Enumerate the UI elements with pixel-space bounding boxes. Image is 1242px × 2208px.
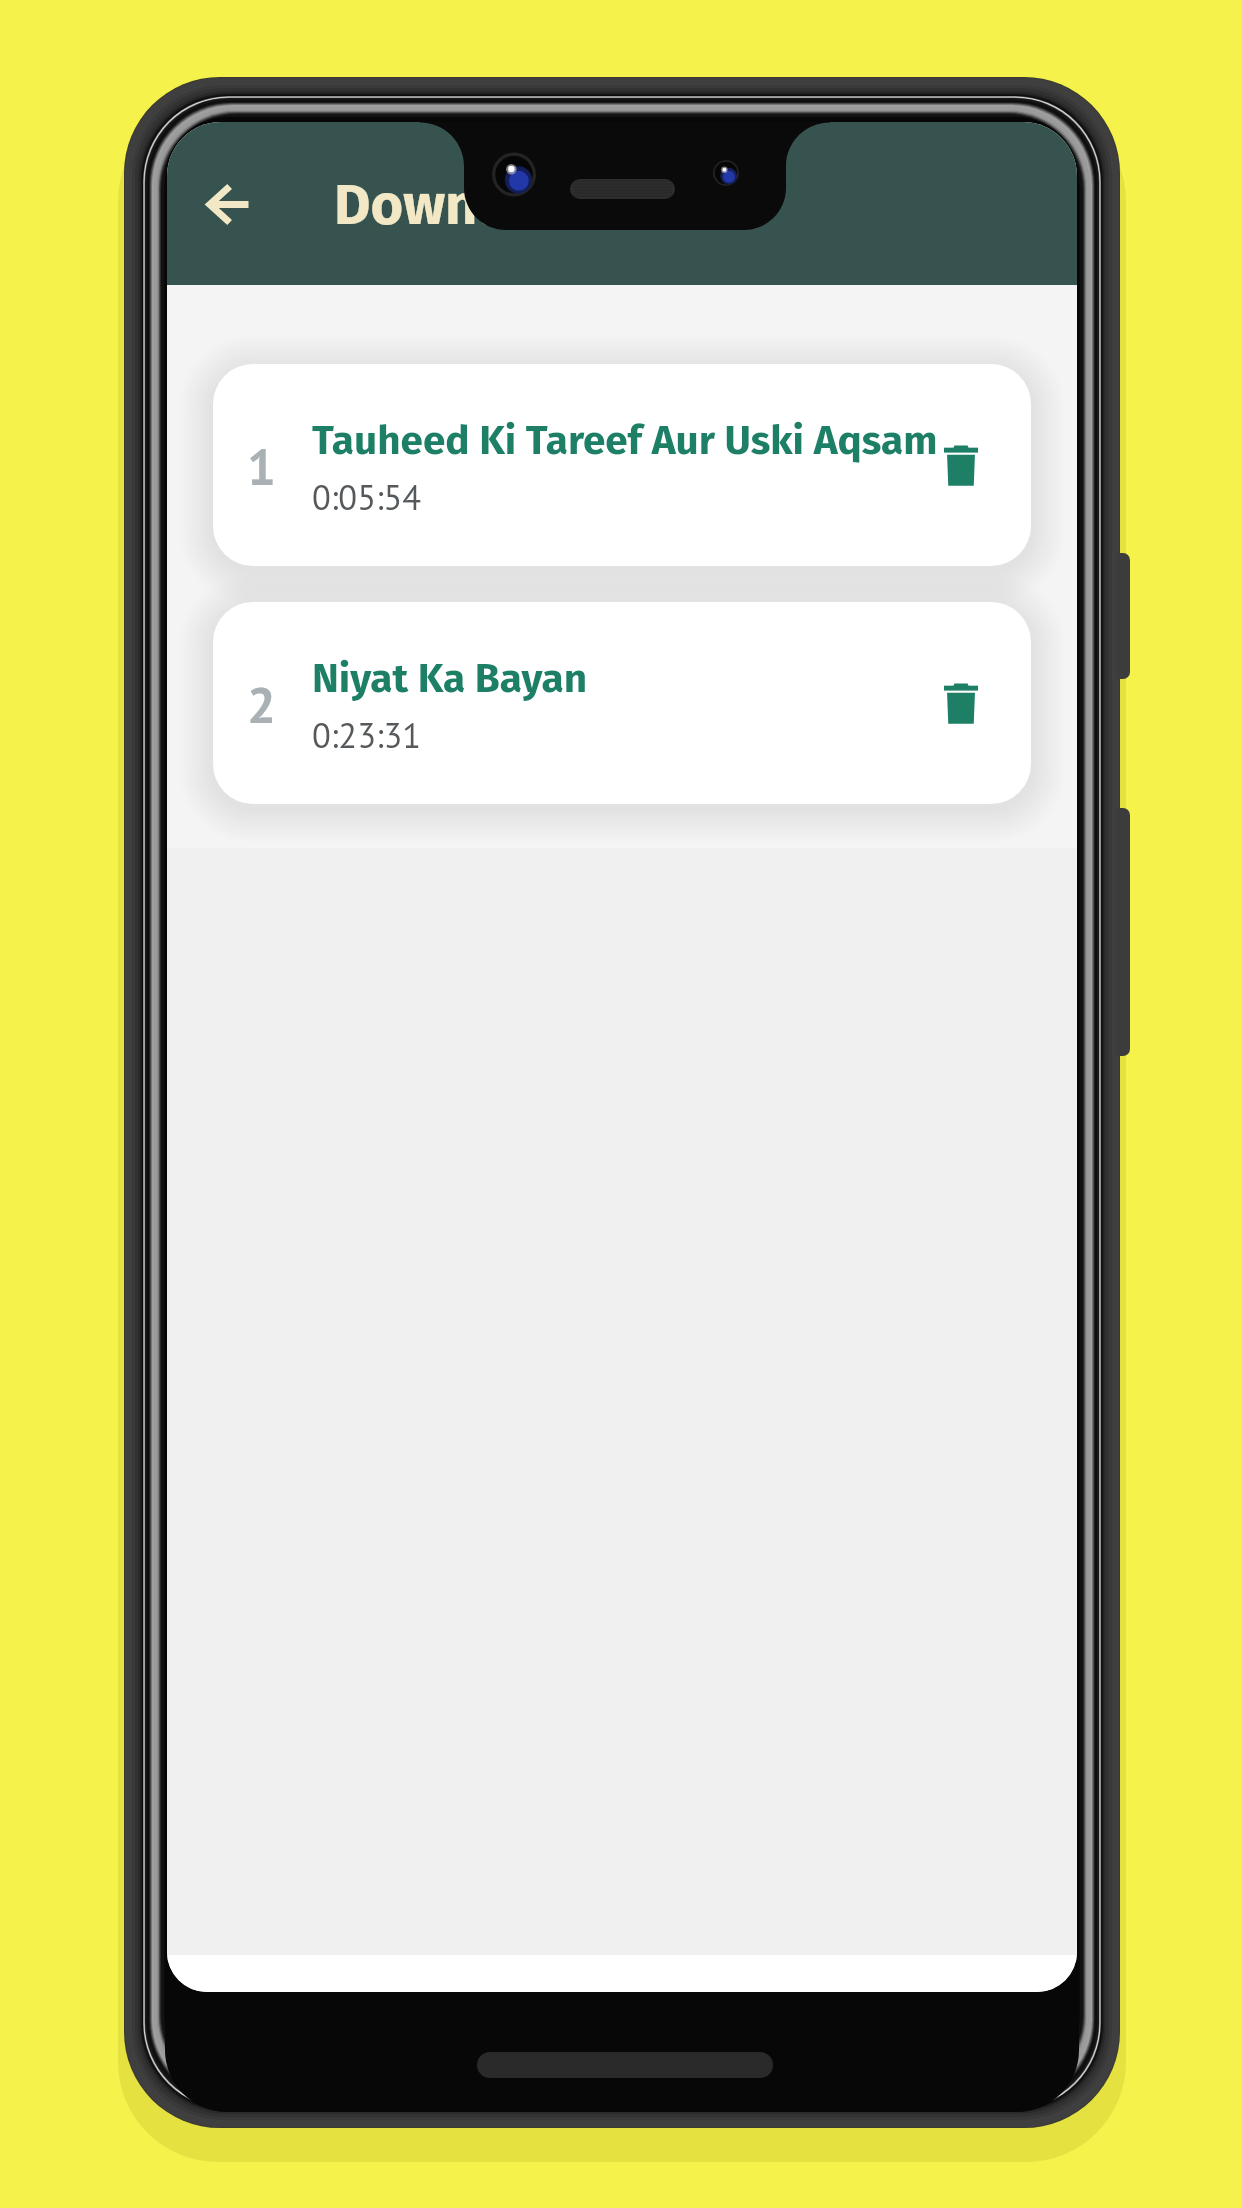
button[interactable]: 1 xyxy=(213,364,1031,566)
staticText: Downloads xyxy=(334,172,618,239)
staticText: 0:05:54 xyxy=(312,475,422,520)
staticText: 2 xyxy=(247,671,276,737)
staticText: 0:23:31 xyxy=(312,713,422,758)
button[interactable]: Delete xyxy=(923,666,999,742)
staticText: Niyat Ka Bayan xyxy=(312,654,588,703)
button[interactable]: Delete xyxy=(923,428,999,504)
button[interactable]: 2 xyxy=(213,602,1031,804)
staticText: Tauheed Ki Tareef Aur Uski Aqsam xyxy=(312,416,923,465)
button[interactable]: Back xyxy=(191,166,267,242)
staticText: 1 xyxy=(247,433,276,499)
